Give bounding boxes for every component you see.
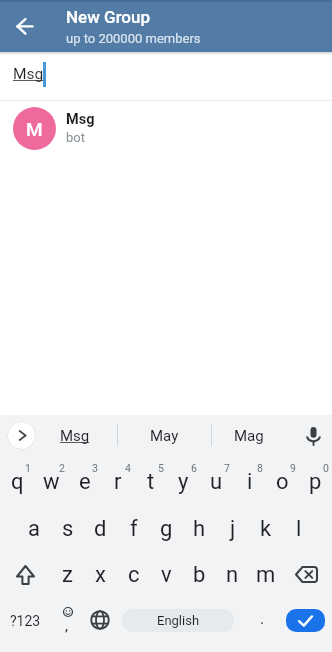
button[interactable]: [0, 548, 51, 595]
button[interactable]: i: [233, 455, 266, 502]
staticText: 8: [257, 462, 263, 474]
staticText: 4: [125, 462, 131, 474]
button[interactable]: o: [266, 455, 299, 502]
staticText: 5: [158, 462, 164, 474]
button[interactable]: May: [134, 415, 194, 455]
staticText: q: [11, 469, 24, 495]
staticText: b: [193, 562, 206, 588]
staticText: l: [296, 516, 302, 542]
button[interactable]: s: [51, 502, 84, 548]
button[interactable]: [4, 6, 44, 46]
staticText: English: [157, 613, 200, 628]
button[interactable]: q: [0, 455, 34, 502]
staticText: a: [28, 516, 40, 542]
button[interactable]: p: [299, 455, 332, 502]
staticText: v: [161, 562, 172, 588]
staticText: h: [193, 516, 206, 542]
button[interactable]: l: [282, 502, 315, 548]
staticText: 6: [191, 462, 197, 474]
button[interactable]: t: [134, 455, 167, 502]
button[interactable]: Mag: [219, 415, 279, 455]
button[interactable]: r: [101, 455, 134, 502]
button[interactable]: v: [150, 548, 183, 595]
staticText: ?123: [10, 613, 41, 629]
staticText: Msg: [60, 427, 90, 445]
staticText: n: [226, 562, 239, 588]
staticText: New Group: [66, 7, 151, 27]
staticText: r: [114, 469, 122, 495]
button[interactable]: a: [17, 502, 51, 548]
button[interactable]: c: [117, 548, 150, 595]
staticText: f: [130, 516, 138, 542]
button[interactable]: .: [249, 595, 282, 645]
staticText: c: [128, 562, 140, 588]
staticText: e: [79, 469, 91, 495]
staticText: k: [260, 516, 272, 542]
button[interactable]: u: [200, 455, 233, 502]
button[interactable]: [286, 609, 325, 632]
staticText: j: [230, 516, 236, 542]
button[interactable]: [7, 421, 36, 450]
button[interactable]: ,: [50, 595, 83, 645]
staticText: 1: [25, 462, 31, 474]
staticText: .: [260, 609, 265, 628]
staticText: i: [247, 469, 253, 495]
button[interactable]: [298, 421, 326, 449]
staticText: y: [178, 469, 189, 495]
button[interactable]: j: [216, 502, 249, 548]
staticText: o: [276, 469, 289, 495]
staticText: ,: [65, 617, 68, 635]
button[interactable]: English: [122, 609, 234, 632]
button[interactable]: m: [249, 548, 282, 595]
button[interactable]: k: [249, 502, 282, 548]
button[interactable]: w: [34, 455, 68, 502]
button[interactable]: g: [150, 502, 183, 548]
button[interactable]: f: [117, 502, 150, 548]
button[interactable]: e: [68, 455, 101, 502]
button[interactable]: n: [216, 548, 249, 595]
staticText: 9: [290, 462, 296, 474]
staticText: u: [210, 469, 223, 495]
button[interactable]: Msg: [0, 55, 332, 100]
staticText: 3: [92, 462, 98, 474]
button[interactable]: ?123: [0, 595, 50, 645]
staticText: d: [94, 516, 107, 542]
staticText: p: [309, 469, 322, 495]
staticText: M: [26, 118, 43, 140]
staticText: 2: [59, 462, 65, 474]
button[interactable]: [83, 595, 116, 645]
staticText: 0: [323, 462, 329, 474]
staticText: w: [43, 469, 60, 495]
staticText: s: [62, 516, 74, 542]
staticText: Msg: [13, 65, 44, 83]
button[interactable]: b: [183, 548, 216, 595]
staticText: up to 200000 members: [66, 31, 201, 46]
button[interactable]: M: [0, 101, 332, 155]
staticText: 7: [224, 462, 230, 474]
staticText: g: [160, 516, 173, 542]
staticText: Msg: [66, 111, 95, 128]
button[interactable]: h: [183, 502, 216, 548]
staticText: t: [147, 469, 155, 495]
staticText: m: [256, 562, 276, 588]
button[interactable]: Msg: [45, 415, 105, 455]
staticText: Mag: [234, 427, 264, 445]
button[interactable]: [282, 548, 332, 595]
button[interactable]: y: [167, 455, 200, 502]
staticText: bot: [66, 130, 85, 145]
button[interactable]: d: [84, 502, 117, 548]
staticText: x: [95, 562, 106, 588]
staticText: May: [150, 427, 179, 445]
staticText: z: [62, 562, 73, 588]
button[interactable]: z: [51, 548, 84, 595]
button[interactable]: x: [84, 548, 117, 595]
